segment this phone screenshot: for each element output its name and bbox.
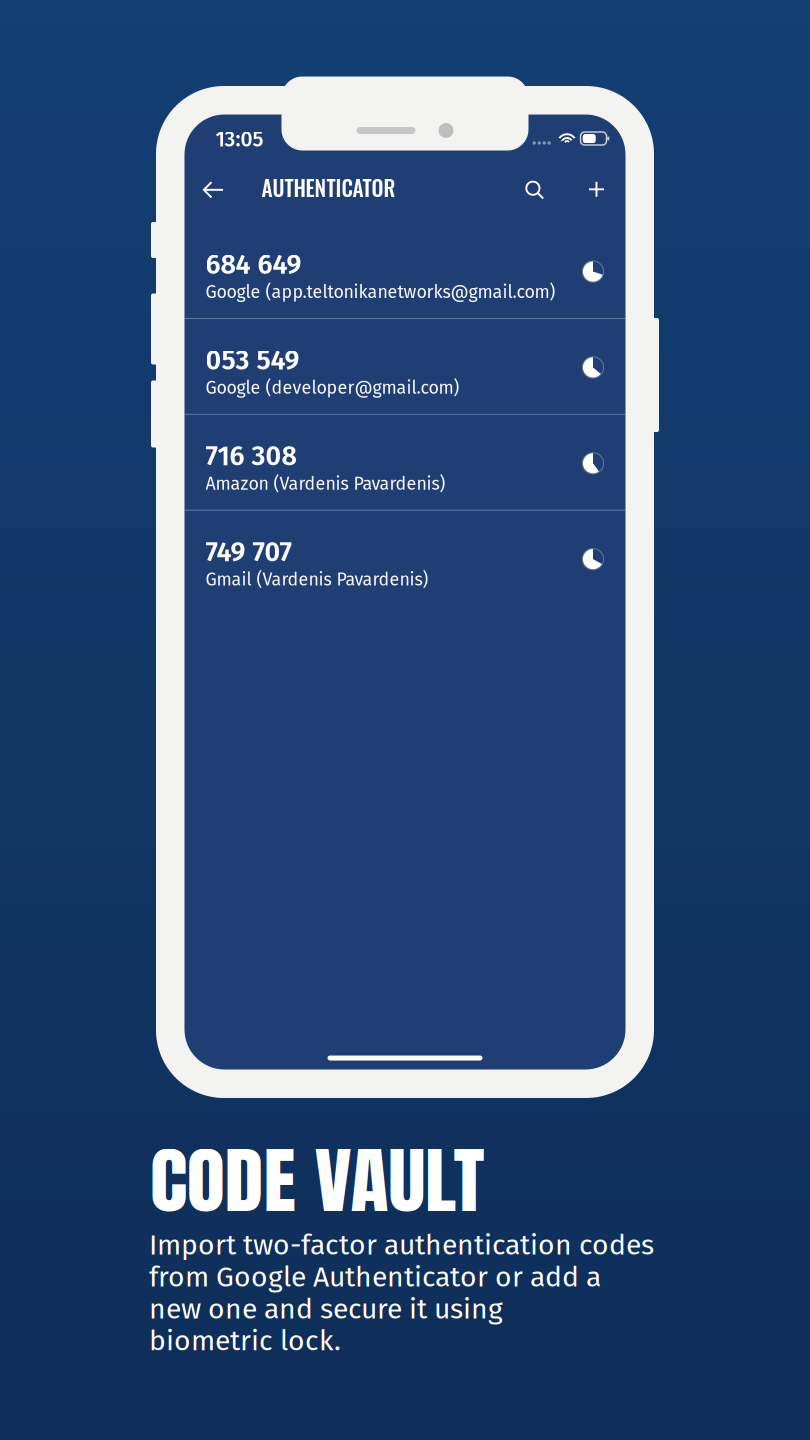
button[interactable]: 749 707	[184, 511, 625, 605]
button[interactable]: 684 649	[184, 223, 625, 318]
staticText: new one and secure it using	[149, 1292, 503, 1326]
button[interactable]: Add account	[573, 169, 619, 215]
staticText: 684 649	[205, 248, 301, 281]
staticText: 749 707	[205, 536, 291, 568]
staticText: biometric lock.	[149, 1324, 341, 1358]
staticText: Amazon (Vardenis Pavardenis)	[205, 473, 445, 494]
staticText: from Google Authenticator or add a	[149, 1260, 601, 1294]
staticText: CODE VAULT	[150, 1125, 469, 1237]
button[interactable]: Search	[511, 169, 557, 215]
staticText: Import two-factor authentication codes	[149, 1228, 654, 1262]
staticText: Google (app.teltonikanetworks@gmail.com)	[205, 281, 555, 303]
button[interactable]: 053 549	[184, 319, 625, 414]
button[interactable]: 716 308	[184, 415, 625, 510]
staticText: 053 549	[205, 344, 299, 377]
staticText: Gmail (Vardenis Pavardenis)	[205, 569, 428, 590]
button[interactable]: Back	[193, 170, 233, 214]
staticText: 716 308	[205, 440, 296, 472]
staticText: Google (developer@gmail.com)	[205, 377, 459, 399]
staticText: 13:05	[215, 127, 263, 152]
staticText: AUTHENTICATOR	[261, 172, 395, 203]
